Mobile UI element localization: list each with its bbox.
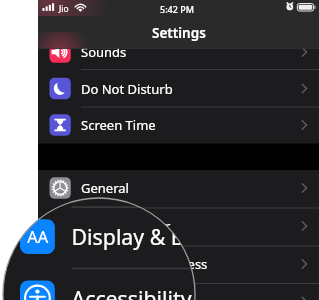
staticText: General <box>81 179 129 197</box>
button[interactable]: Display & Brightness <box>81 255 291 273</box>
staticText: Accessibility <box>72 284 193 300</box>
staticText: 5:42 PM <box>160 3 194 15</box>
staticText: AA <box>27 225 49 248</box>
staticText: Control Center <box>72 160 219 189</box>
button[interactable]: Do Not Disturb <box>81 80 291 98</box>
staticText: Settings <box>152 24 206 41</box>
button[interactable]: Display & Brightness <box>72 222 319 251</box>
button[interactable]: General <box>81 179 291 197</box>
staticText: Sounds <box>81 43 127 61</box>
staticText: Display & Brightness <box>81 255 208 273</box>
staticText: Accessibility <box>81 293 155 300</box>
staticText: Display & Brightness <box>72 222 279 251</box>
staticText: Do Not Disturb <box>81 80 173 98</box>
button[interactable]: Control Center <box>81 217 291 235</box>
button[interactable]: Control Center <box>72 160 319 189</box>
button[interactable]: Sounds <box>81 43 291 61</box>
button[interactable]: Screen Time <box>72 0 319 24</box>
staticText: Screen Time <box>81 116 156 134</box>
staticText: General <box>72 97 150 127</box>
button[interactable]: Accessibility <box>72 284 319 300</box>
staticText: Screen Time <box>72 0 194 24</box>
button[interactable]: Accessibility <box>81 293 291 300</box>
button[interactable]: General <box>72 97 319 127</box>
button[interactable]: Screen Time <box>81 116 291 134</box>
staticText: Control Center <box>81 217 171 235</box>
staticText: Jio <box>59 3 69 15</box>
